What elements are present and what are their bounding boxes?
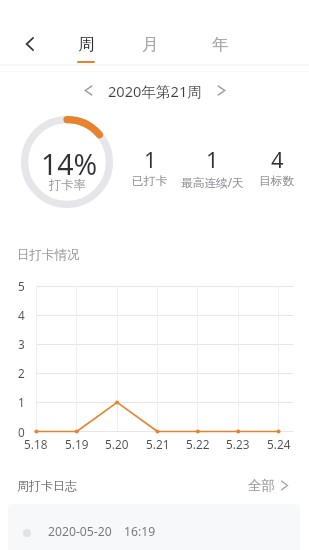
- staticText: 2020年第21周: [108, 81, 202, 101]
- button[interactable]: 周: [64, 26, 108, 66]
- staticText: 1: [206, 144, 219, 174]
- button[interactable]: Back: [13, 27, 47, 61]
- staticText: 5.19: [65, 436, 89, 452]
- staticText: 全部: [248, 477, 275, 494]
- button[interactable]: 4: [241, 144, 309, 192]
- staticText: 5.23: [226, 436, 250, 452]
- button[interactable]: 全部: [248, 477, 290, 494]
- staticText: 0: [18, 424, 25, 440]
- staticText: 1: [144, 144, 157, 174]
- staticText: 5: [18, 278, 25, 294]
- staticText: 4: [18, 307, 25, 323]
- staticText: 日打卡情况: [17, 247, 80, 263]
- staticText: 最高连续/天: [181, 174, 244, 190]
- staticText: 14%: [41, 145, 98, 184]
- staticText: 月: [142, 34, 159, 55]
- staticText: 5.21: [146, 436, 170, 452]
- button[interactable]: 月: [128, 26, 172, 66]
- staticText: 打卡率: [49, 177, 86, 192]
- staticText: 5.18: [24, 436, 48, 452]
- staticText: 5.22: [186, 436, 210, 452]
- staticText: 3: [18, 336, 25, 352]
- staticText: 16:19: [124, 523, 156, 540]
- staticText: 已打卡: [132, 174, 168, 189]
- button[interactable]: 1: [176, 144, 248, 192]
- button[interactable]: Next week: [207, 76, 235, 104]
- staticText: 5.24: [267, 436, 291, 452]
- staticText: 4: [271, 144, 284, 174]
- staticText: 2: [18, 365, 25, 381]
- button[interactable]: 年: [198, 26, 242, 66]
- staticText: 5.20: [105, 436, 129, 452]
- button[interactable]: Previous week: [74, 76, 102, 104]
- button[interactable]: 1: [114, 144, 186, 192]
- staticText: 周打卡日志: [17, 478, 77, 493]
- button[interactable]: 2020-05-20: [8, 504, 300, 550]
- staticText: 目标数: [259, 174, 295, 189]
- staticText: 周: [78, 34, 95, 55]
- staticText: 年: [212, 34, 229, 55]
- staticText: 1: [18, 394, 25, 410]
- staticText: 2020-05-20: [48, 523, 112, 540]
